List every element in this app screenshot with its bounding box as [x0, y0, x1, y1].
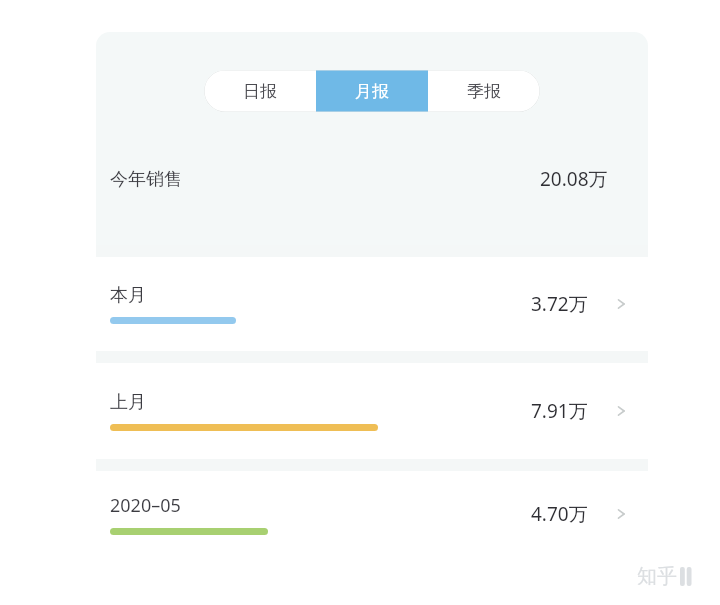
- staticText: 上月: [110, 391, 146, 414]
- staticText: 今年销售: [110, 168, 182, 191]
- staticText: 7.91万: [531, 398, 588, 424]
- staticText: 4.70万: [531, 501, 588, 527]
- staticText: 月报: [355, 81, 389, 102]
- button[interactable]: 查看详情: [608, 291, 634, 317]
- button[interactable]: 今年销售: [96, 113, 648, 245]
- button[interactable]: 本月: [96, 257, 648, 351]
- staticText: 20.08万: [540, 166, 608, 192]
- staticText: 2020–05: [110, 493, 181, 518]
- button[interactable]: 日报: [204, 70, 316, 112]
- staticText: 知乎: [637, 564, 677, 589]
- button[interactable]: 季报: [428, 70, 540, 112]
- button[interactable]: 查看详情: [608, 501, 634, 527]
- button[interactable]: 2020–05: [96, 471, 648, 557]
- button[interactable]: 上月: [96, 363, 648, 459]
- staticText: 本月: [110, 284, 146, 307]
- staticText: 日报: [243, 81, 277, 102]
- button[interactable]: 月报: [316, 70, 428, 112]
- staticText: 3.72万: [531, 291, 588, 317]
- button[interactable]: 查看详情: [608, 398, 634, 424]
- staticText: 季报: [467, 81, 501, 102]
